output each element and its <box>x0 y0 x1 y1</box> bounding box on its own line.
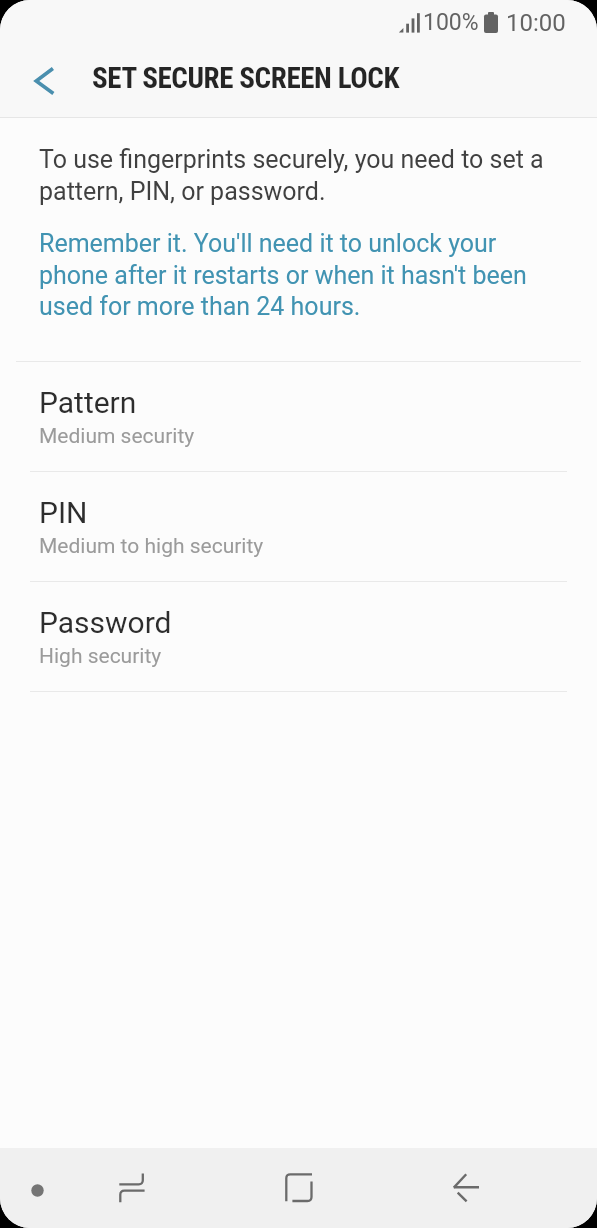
button[interactable]: Password <box>0 582 597 691</box>
staticText: To use fingerprints securely, you need t… <box>39 145 544 206</box>
staticText: Medium security <box>39 424 195 449</box>
button[interactable] <box>438 1160 494 1216</box>
staticText: High security <box>39 644 162 669</box>
staticText: Remember it. You'll need it to unlock yo… <box>39 229 527 321</box>
staticText: 10:00 <box>506 9 566 37</box>
staticText: Pattern <box>39 385 137 420</box>
button[interactable]: Pattern <box>0 362 597 471</box>
staticText: Medium to high security <box>39 534 264 559</box>
button[interactable] <box>103 1160 159 1216</box>
staticText: 100% <box>423 9 479 36</box>
staticText: Password <box>39 605 172 640</box>
staticText: SET SECURE SCREEN LOCK <box>92 61 400 95</box>
button[interactable]: PIN <box>0 472 597 581</box>
button[interactable] <box>0 45 92 117</box>
staticText: PIN <box>39 495 88 530</box>
button[interactable] <box>271 1160 327 1216</box>
